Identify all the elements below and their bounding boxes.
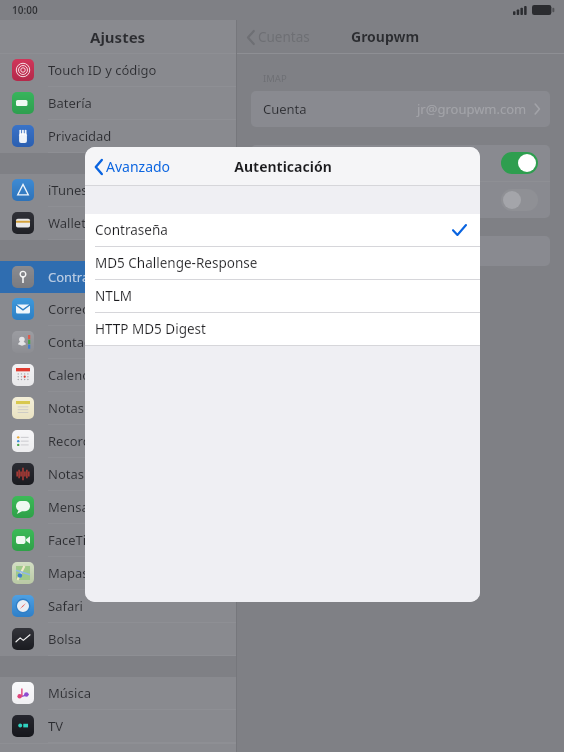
button[interactable]: Mapas [0, 557, 236, 590]
staticText: Autenticación [234, 157, 332, 176]
button[interactable]: Wallet y Apple Pay [0, 207, 236, 240]
button[interactable]: Desactivado [251, 182, 550, 218]
staticText: Música [48, 684, 91, 702]
staticText: Notas [48, 399, 84, 417]
staticText: Safari [48, 597, 83, 615]
staticText: MD5 Challenge-Response [95, 254, 258, 272]
staticText: IMAP [263, 72, 287, 85]
staticText: Cuenta [263, 100, 307, 118]
staticText: Contraseña [95, 221, 168, 239]
staticText: Groupwm [351, 27, 420, 46]
staticText: Contactos [48, 333, 110, 351]
staticText: HTTP MD5 Digest [95, 320, 206, 338]
staticText: Batería [48, 94, 92, 112]
staticText: Cuentas [258, 28, 310, 46]
other: Activado [501, 152, 538, 174]
staticText: Ajustes [90, 27, 146, 47]
button[interactable]: Batería [0, 87, 236, 120]
button[interactable]: Touch ID y código [0, 54, 236, 87]
button[interactable]: MD5 Challenge-Response [85, 247, 480, 279]
button[interactable]: Notas [0, 392, 236, 425]
button[interactable]: Safari [0, 590, 236, 623]
staticText: Bolsa [48, 630, 82, 648]
staticText: Mensajes [48, 498, 106, 516]
button[interactable]: Música [0, 677, 236, 710]
button[interactable] [251, 236, 550, 266]
button[interactable]: Recordatorios [0, 425, 236, 458]
staticText: TV [48, 717, 64, 735]
staticText: iTunes Store y App Store [48, 181, 197, 199]
button[interactable]: HTTP MD5 Digest [85, 313, 480, 345]
staticText: Contraseñas y cuentas [48, 268, 186, 286]
staticText: Privacidad [48, 127, 112, 145]
button[interactable]: Avanzado [93, 152, 173, 181]
staticText: Wallet y Apple Pay [48, 214, 160, 232]
button[interactable]: FaceTime [0, 524, 236, 557]
staticText: Notas de voz [48, 465, 127, 483]
button[interactable]: TV [0, 710, 236, 743]
button[interactable]: Activado [251, 145, 550, 181]
other: Desactivado [501, 189, 538, 211]
staticText: Avanzado [106, 157, 171, 176]
button[interactable]: Contraseña [85, 214, 480, 246]
staticText: Mapas [48, 564, 89, 582]
staticText: jr@groupwm.com [417, 100, 527, 118]
button[interactable]: Contactos [0, 326, 236, 359]
button[interactable]: iTunes Store y App Store [0, 174, 236, 207]
button[interactable]: Calendario [0, 359, 236, 392]
staticText: NTLM [95, 287, 133, 305]
button[interactable]: Bolsa [0, 623, 236, 656]
button[interactable]: NTLM [85, 280, 480, 312]
button[interactable]: Notas de voz [0, 458, 236, 491]
staticText: 10:00 [12, 3, 38, 17]
button[interactable]: Mensajes [0, 491, 236, 524]
staticText: Recordatorios [48, 432, 134, 450]
button[interactable]: Cuentas [245, 24, 312, 50]
button[interactable]: Correo [0, 293, 236, 326]
button[interactable]: Cuenta [251, 91, 550, 127]
staticText: FaceTime [48, 531, 106, 549]
staticText: Touch ID y código [48, 61, 157, 79]
button[interactable]: Contraseñas y cuentas [0, 261, 236, 293]
staticText: Calendario [48, 366, 115, 384]
staticText: Correo [48, 300, 90, 318]
button[interactable]: Privacidad [0, 120, 236, 153]
